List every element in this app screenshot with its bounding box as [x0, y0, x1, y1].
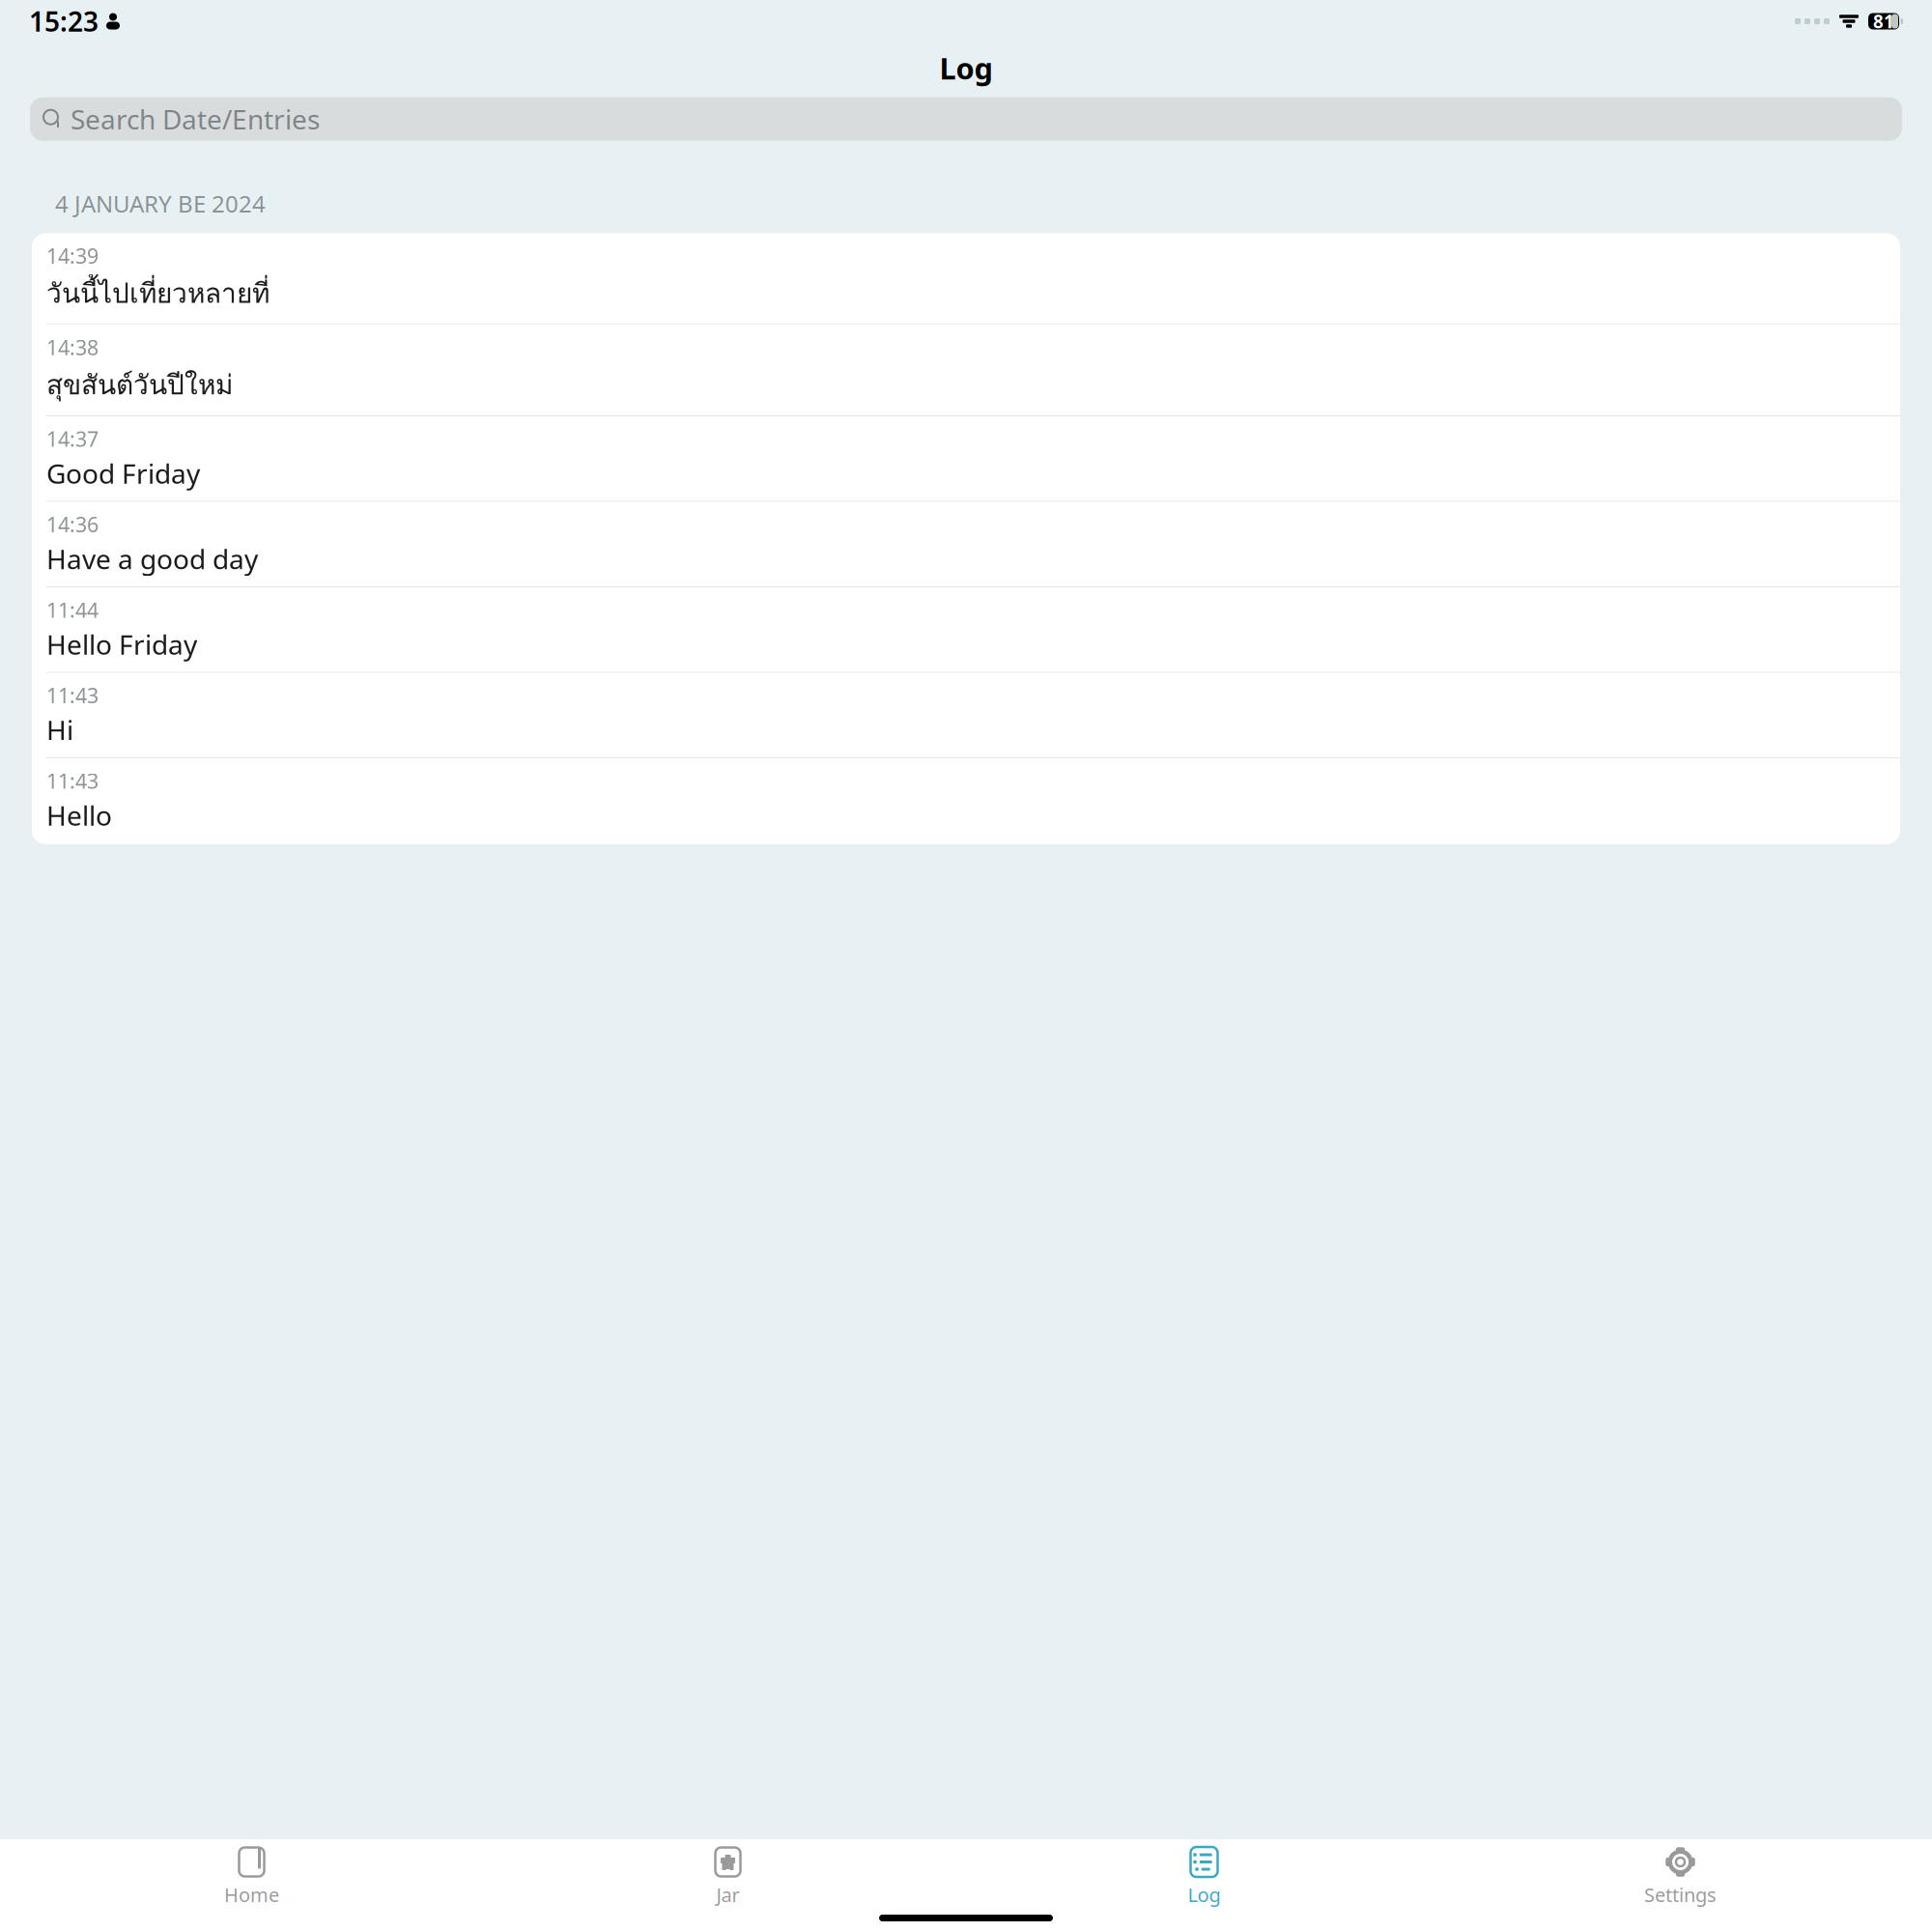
staticText: Settings — [1644, 1882, 1717, 1907]
staticText: Search Date/Entries — [71, 101, 320, 137]
button[interactable]: 11:43 — [32, 673, 1900, 758]
button[interactable]: 14:37 — [32, 416, 1900, 502]
staticText: Good Friday — [46, 455, 200, 491]
staticText: วันนี้ไปเที่ยวหลายที่ — [46, 272, 270, 314]
button[interactable]: Settings — [1442, 1839, 1918, 1911]
staticText: Hello Friday — [46, 626, 197, 662]
button[interactable]: Home — [14, 1839, 490, 1911]
staticText: Jar — [716, 1882, 739, 1907]
staticText: 14:38 — [46, 334, 99, 361]
staticText: 81 — [1873, 9, 1894, 33]
staticText: Hi — [46, 712, 73, 748]
staticText: Home — [224, 1882, 279, 1907]
staticText: Log — [1188, 1882, 1221, 1907]
staticText: 11:43 — [46, 767, 99, 794]
button[interactable]: 14:36 — [32, 502, 1900, 587]
button[interactable]: 11:43 — [32, 758, 1900, 844]
staticText: Log — [939, 48, 993, 88]
staticText: 14:36 — [46, 511, 99, 538]
button[interactable]: Search Date/Entries — [30, 97, 1902, 141]
staticText: 15:23 — [29, 3, 99, 39]
staticText: 14:39 — [46, 242, 99, 269]
staticText: 14:37 — [46, 425, 99, 452]
staticText: 4 JANUARY BE 2024 — [55, 188, 266, 219]
button[interactable]: Jar — [490, 1839, 966, 1911]
staticText: Have a good day — [46, 541, 258, 577]
staticText: 11:44 — [46, 596, 99, 623]
staticText: สุขสันต์วันปีใหม่ — [46, 364, 233, 406]
staticText: 11:43 — [46, 682, 99, 709]
staticText: Hello — [46, 797, 112, 833]
button[interactable]: 11:44 — [32, 587, 1900, 673]
button[interactable]: 14:39 — [32, 233, 1900, 325]
button[interactable]: Log — [966, 1839, 1442, 1911]
button[interactable]: 14:38 — [32, 325, 1900, 416]
